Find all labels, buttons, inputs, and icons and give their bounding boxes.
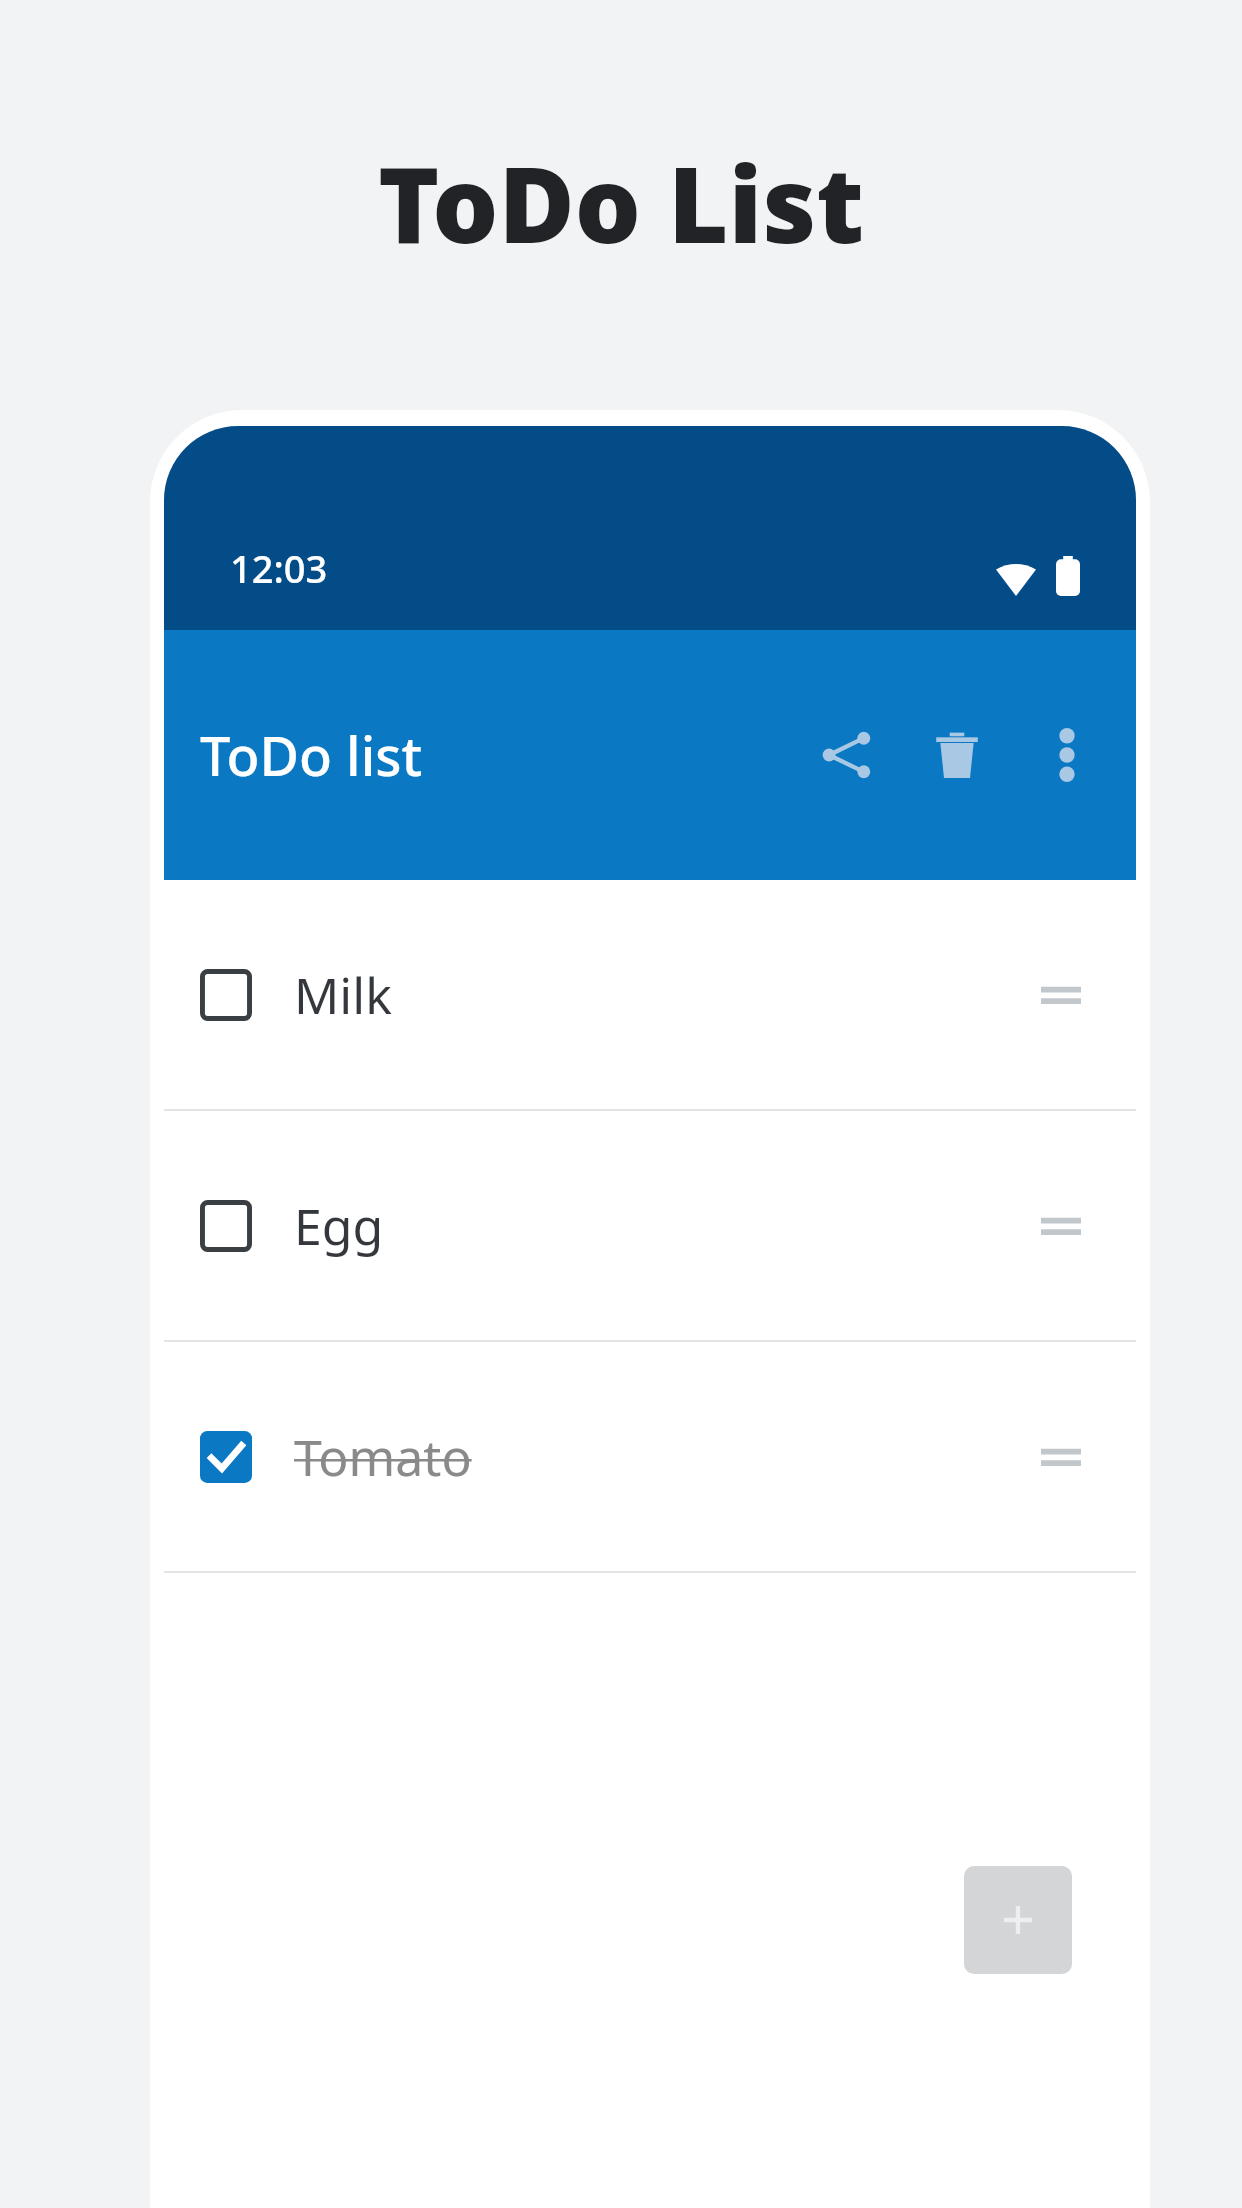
- button[interactable]: Reorder Milk: [1022, 956, 1100, 1034]
- button[interactable]: More options: [1012, 700, 1122, 810]
- button[interactable]: Reorder Egg: [1022, 1187, 1100, 1265]
- button[interactable]: Add task: [964, 1866, 1072, 1974]
- staticText: Egg: [294, 1192, 384, 1260]
- staticText: Tomato: [294, 1423, 472, 1491]
- button[interactable]: Milk: [164, 880, 1136, 1109]
- staticText: 12:03: [230, 542, 328, 594]
- button[interactable]: Reorder Tomato: [1022, 1418, 1100, 1496]
- button[interactable]: Share: [792, 700, 902, 810]
- staticText: Milk: [294, 961, 392, 1029]
- button[interactable]: Egg: [164, 1111, 1136, 1340]
- staticText: ToDo List: [378, 132, 864, 274]
- button[interactable]: Delete: [902, 700, 1012, 810]
- staticText: ToDo list: [200, 718, 423, 792]
- button[interactable]: Tomato: [164, 1342, 1136, 1571]
